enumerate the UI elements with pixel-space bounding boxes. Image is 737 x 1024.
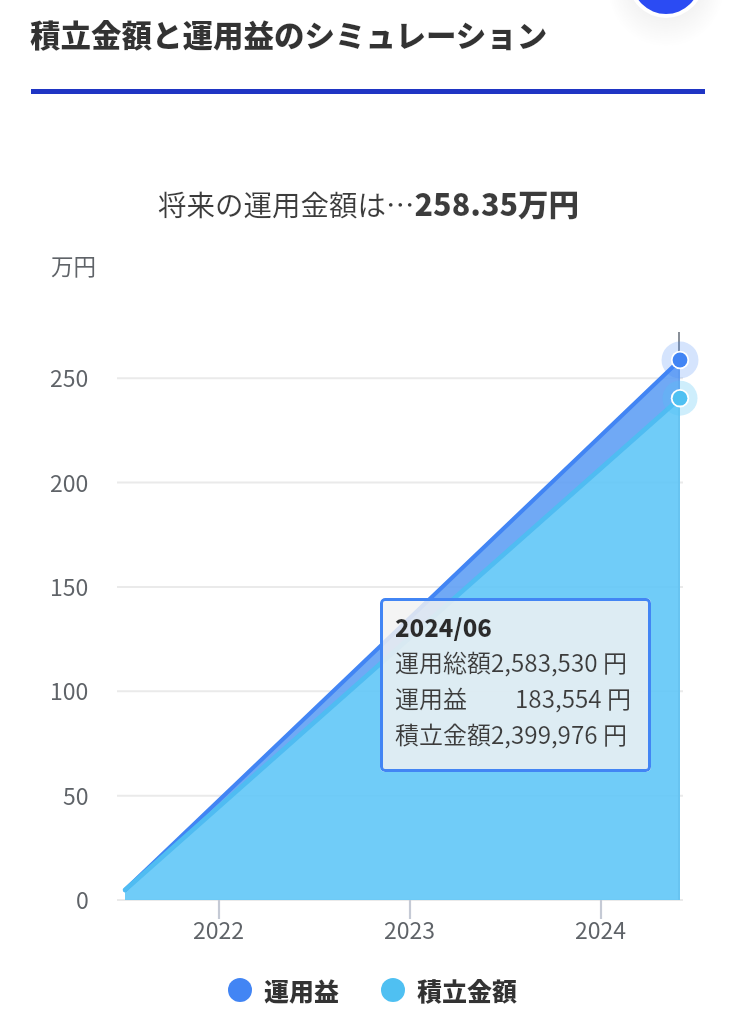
staticText: 250	[50, 360, 89, 393]
staticText: 2022	[193, 912, 245, 945]
staticText: 100	[50, 673, 89, 706]
button[interactable]: 運用益	[228, 972, 340, 1008]
staticText: 積立金額2,399,976 円	[395, 716, 627, 751]
staticText: 200	[50, 465, 89, 498]
staticText: 運用益	[264, 972, 340, 1008]
button[interactable]: 積立金額	[381, 972, 518, 1008]
staticText: 150	[50, 569, 89, 602]
staticText: 積立金額	[417, 972, 518, 1008]
staticText: 運用益 183,554 円	[395, 680, 631, 715]
staticText: 万円	[51, 249, 97, 282]
button[interactable]: Add	[632, 0, 700, 14]
staticText: 運用総額2,583,530 円	[395, 644, 627, 679]
staticText: 50	[63, 778, 89, 811]
staticText: 2024/06	[395, 609, 492, 644]
staticText: 積立金額と運用益のシミュレーション	[30, 12, 548, 56]
staticText: 0	[76, 882, 89, 915]
staticText: 2023	[384, 912, 436, 945]
staticText: 将来の運用金額は…258.35万円	[158, 181, 580, 225]
staticText: 2024	[575, 912, 627, 945]
